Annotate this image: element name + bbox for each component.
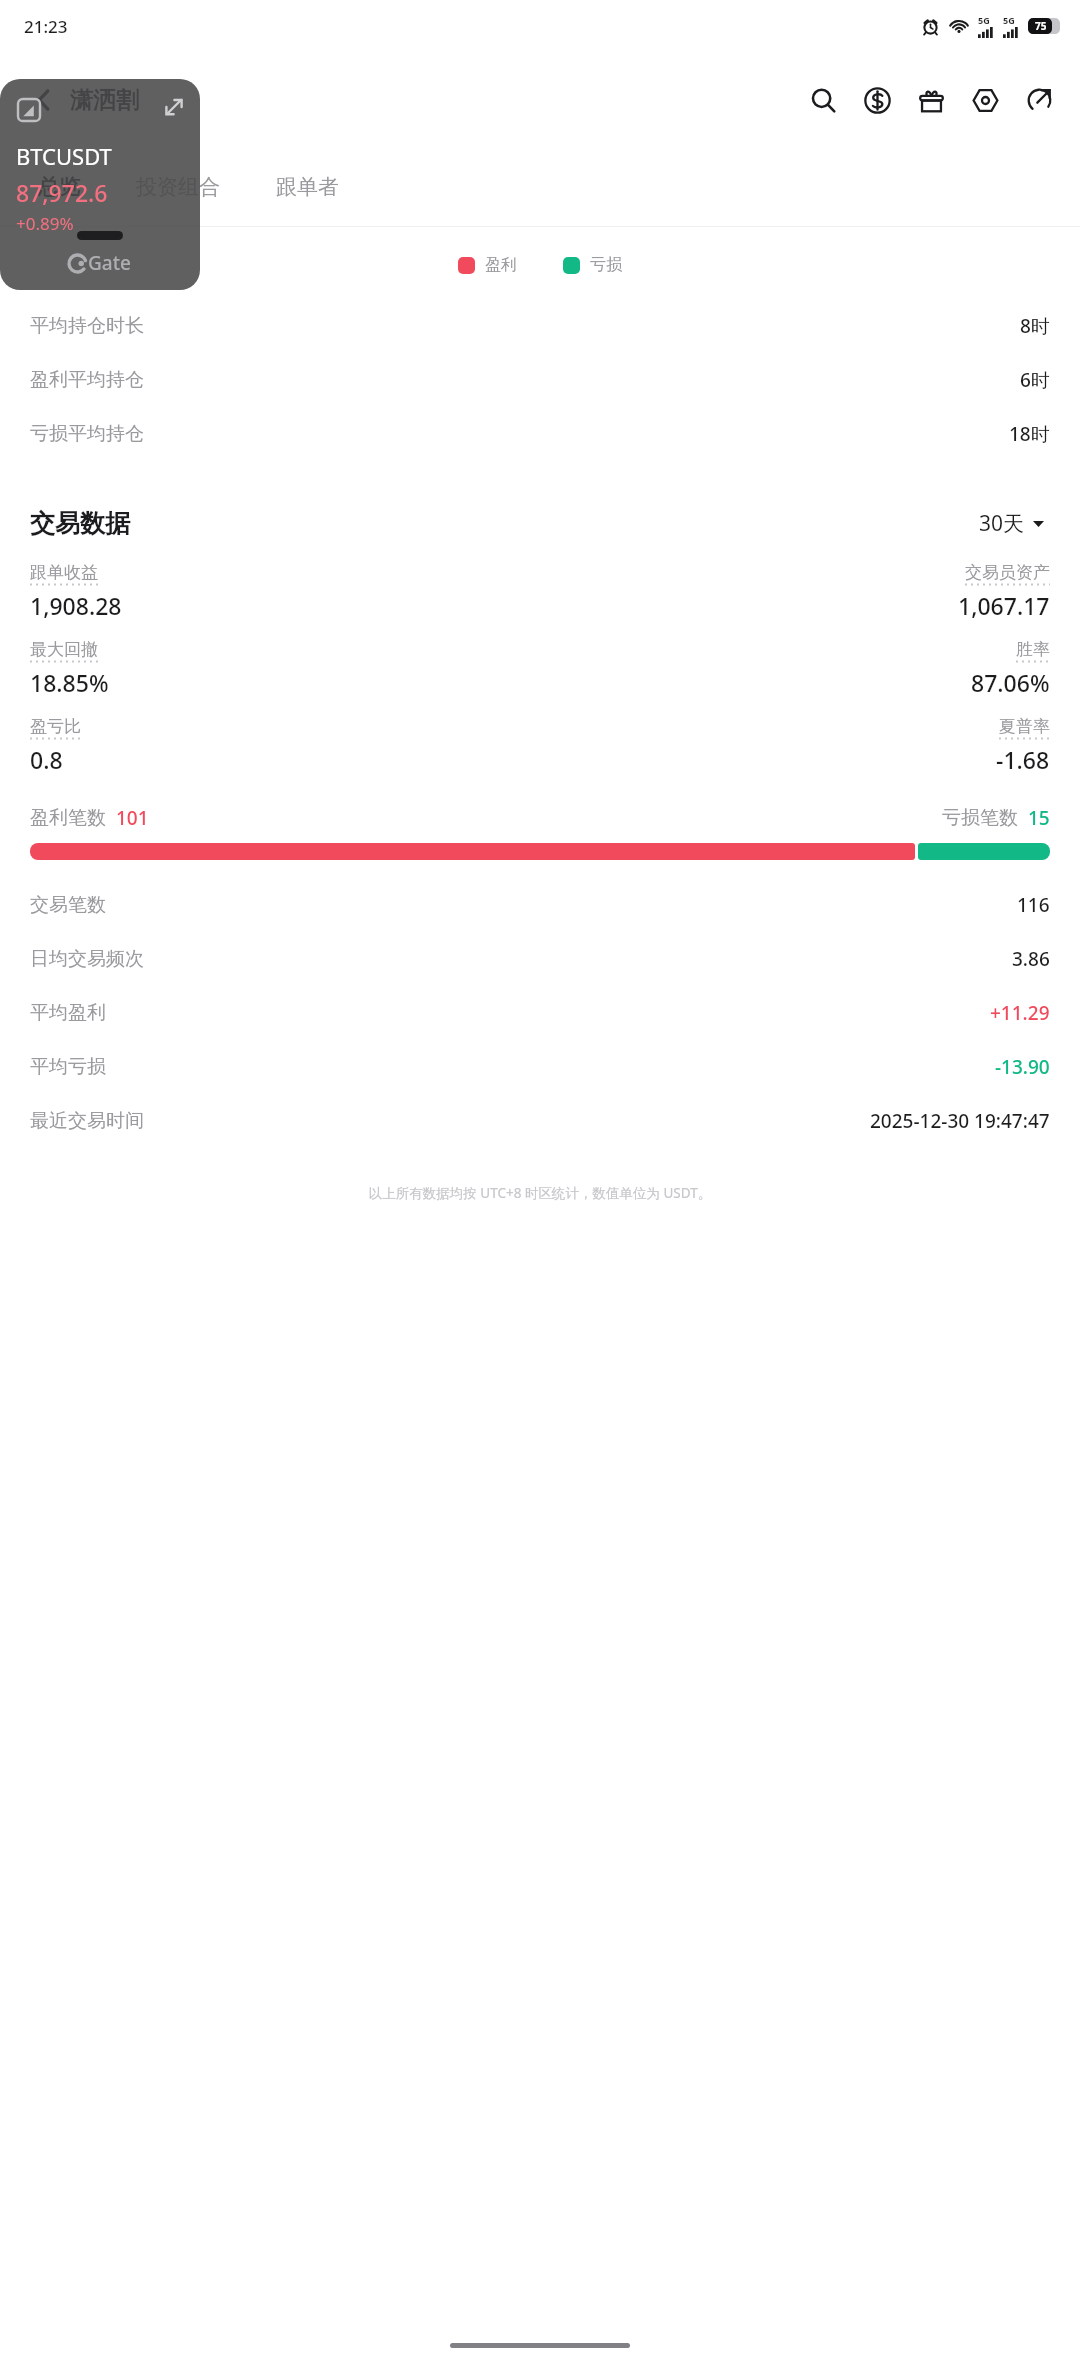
staticText: 亏损平均持仓 [30, 422, 144, 446]
staticText: 平均盈利 [30, 1001, 106, 1025]
button[interactable]: 跟单者 [268, 164, 347, 210]
button[interactable]: 盈利平均持仓 [0, 353, 1080, 407]
button[interactable]: Settings [958, 73, 1012, 127]
staticText: 投资组合 [136, 174, 220, 200]
button[interactable]: 平均持仓时长 [0, 299, 1080, 353]
staticText: -13.90 [995, 1054, 1050, 1080]
button[interactable]: 投资组合 [128, 164, 228, 210]
staticText: 116 [1017, 892, 1050, 918]
staticText: 2025-12-30 19:47:47 [870, 1108, 1050, 1134]
staticText: 以上所有数据均按 UTC+8 时区统计，数值单位为 USDT。 [0, 1184, 1080, 1202]
staticText: -1.68 [996, 744, 1050, 775]
staticText: 平均亏损 [30, 1055, 106, 1079]
button[interactable]: 平均盈利 [0, 986, 1080, 1040]
button[interactable]: Share [1012, 73, 1066, 127]
staticText: 101 [116, 805, 149, 831]
button[interactable]: 日均交易频次 [0, 932, 1080, 986]
staticText: 21:23 [24, 15, 68, 38]
staticText: 15 [1028, 805, 1050, 831]
staticText: 5G [978, 14, 990, 26]
button[interactable]: 30天 [973, 503, 1050, 544]
staticText: 8时 [1020, 313, 1050, 339]
staticText: 1,908.28 [30, 590, 122, 621]
staticText: 87,972.6 [16, 177, 108, 208]
button[interactable]: 亏损平均持仓 [0, 407, 1080, 461]
staticText: BTCUSDT [16, 141, 112, 171]
button[interactable]: Search [796, 73, 850, 127]
staticText: 18时 [1009, 421, 1050, 447]
staticText: 跟单收益 [30, 562, 98, 583]
staticText: 跟单者 [276, 174, 339, 200]
staticText: 87.06% [971, 667, 1050, 698]
staticText: 30天 [979, 509, 1025, 538]
staticText: 0.8 [30, 744, 63, 775]
button[interactable]: Funds [850, 73, 904, 127]
staticText: 盈亏比 [30, 716, 81, 737]
button[interactable]: 平均亏损 [0, 1040, 1080, 1094]
staticText: +0.89% [16, 212, 74, 235]
staticText: 75 [1035, 19, 1047, 33]
staticText: +11.29 [990, 1000, 1050, 1026]
staticText: 盈利平均持仓 [30, 368, 144, 392]
button[interactable]: 最近交易时间 [0, 1094, 1080, 1148]
staticText: 胜率 [1016, 639, 1050, 660]
staticText: 最大回撤 [30, 639, 98, 660]
staticText: 日均交易频次 [30, 947, 144, 971]
staticText: 亏损笔数 [942, 806, 1018, 830]
button[interactable]: Back [18, 74, 70, 126]
staticText: 平均持仓时长 [30, 314, 144, 338]
staticText: 5G [1003, 14, 1015, 26]
button[interactable]: 交易笔数 [0, 878, 1080, 932]
staticText: 总览 [38, 174, 80, 200]
staticText: 交易笔数 [30, 893, 106, 917]
staticText: 6时 [1020, 367, 1050, 393]
staticText: 交易数据 [30, 508, 130, 539]
staticText: 潇洒割 [70, 86, 139, 115]
button[interactable]: 总览 [30, 164, 88, 210]
staticText: 3.86 [1012, 946, 1050, 972]
staticText: 1,067.17 [958, 590, 1050, 621]
button[interactable]: Rewards [904, 73, 958, 127]
staticText: 盈利笔数 [30, 806, 106, 830]
staticText: 亏损 [590, 255, 622, 275]
staticText: 18.85% [30, 667, 109, 698]
staticText: 交易员资产 [965, 562, 1050, 583]
staticText: 最近交易时间 [30, 1109, 144, 1133]
button[interactable]: BTCUSDT price widget [0, 79, 200, 290]
staticText: Gate [88, 250, 131, 276]
staticText: 盈利 [485, 255, 517, 275]
staticText: 夏普率 [999, 716, 1050, 737]
